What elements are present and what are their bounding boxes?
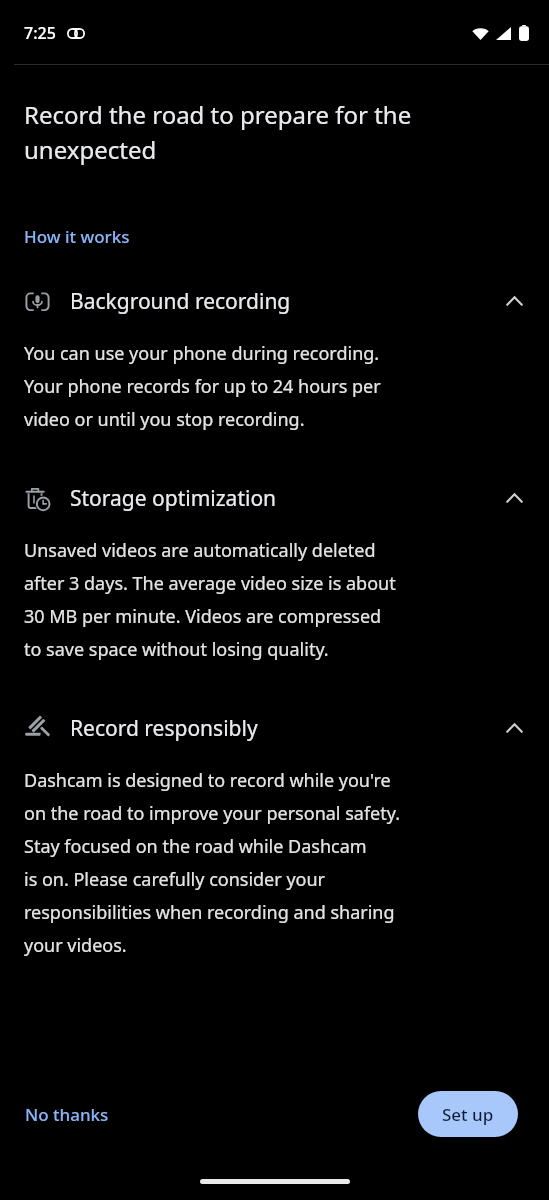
button[interactable]: Background recording [0,281,549,321]
staticText: Unsaved videos are automatically deleted… [24,538,396,661]
staticText: Dashcam is designed to record while you'… [24,768,401,957]
staticText: 7:25 [24,22,56,44]
staticText: Record the road to prepare for the unexp… [24,98,412,166]
staticText: No thanks [25,1103,109,1126]
other: Collapse section [499,286,529,316]
other: Collapse section [499,483,529,513]
staticText: Record responsibly [70,714,258,743]
button[interactable]: Record responsibly [0,708,549,748]
button[interactable]: How it works [22,222,132,251]
button[interactable]: Set up [418,1091,518,1137]
staticText: How it works [24,225,130,248]
staticText: Storage optimization [70,484,277,513]
button[interactable]: No thanks [22,1094,112,1135]
button[interactable]: Storage optimization [0,478,549,518]
staticText: Set up [442,1103,494,1126]
staticText: You can use your phone during recording.… [24,341,381,431]
other: Collapse section [499,713,529,743]
staticText: Background recording [70,287,291,316]
